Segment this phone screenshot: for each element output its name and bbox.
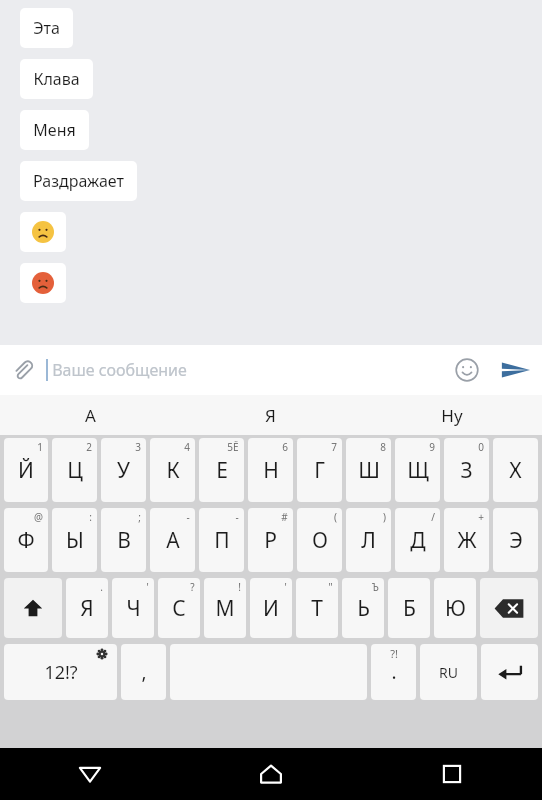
button[interactable]: П xyxy=(199,508,244,572)
staticText: 5Ё xyxy=(227,440,239,454)
staticText: Ы xyxy=(66,526,84,555)
staticText: ?! xyxy=(390,646,398,661)
button[interactable]: 12!? xyxy=(4,644,117,700)
button[interactable]: Н xyxy=(248,438,293,502)
staticText: RU xyxy=(439,663,458,682)
button[interactable]: Attach xyxy=(0,347,46,393)
button[interactable]: Щ xyxy=(395,438,440,502)
button[interactable]: Меня xyxy=(20,110,89,150)
button[interactable]: Send xyxy=(490,345,542,395)
button[interactable]: Раздражает xyxy=(20,161,137,201)
button[interactable]: К xyxy=(150,438,195,502)
button[interactable]: Ц xyxy=(52,438,97,502)
staticText: ? xyxy=(190,580,195,594)
button[interactable]: С xyxy=(158,578,200,638)
button[interactable]: Ю xyxy=(434,578,476,638)
button[interactable]: Р xyxy=(248,508,293,572)
staticText: И xyxy=(263,594,279,623)
button[interactable]: Emoji xyxy=(444,347,490,393)
button[interactable]: RU xyxy=(420,644,477,700)
staticText: 8 xyxy=(380,440,386,454)
staticText: ! xyxy=(238,580,241,594)
button[interactable]: , xyxy=(121,644,166,700)
staticText: " xyxy=(328,580,333,594)
button[interactable]: Ф xyxy=(4,508,48,572)
button[interactable]: Ь xyxy=(342,578,384,638)
button[interactable]: Х xyxy=(493,438,538,502)
button[interactable]: Л xyxy=(346,508,391,572)
staticText: Ь xyxy=(357,594,370,623)
button[interactable]: Shift xyxy=(4,578,62,638)
staticText: М xyxy=(215,594,235,623)
button[interactable]: Ы xyxy=(52,508,97,572)
staticText: 12!? xyxy=(44,660,78,685)
button[interactable]: Я xyxy=(66,578,108,638)
button[interactable]: Home xyxy=(180,748,361,800)
staticText: У xyxy=(117,456,130,485)
button[interactable]: Backspace xyxy=(480,578,538,638)
staticText: Ваше сообщение xyxy=(52,359,187,381)
button[interactable]: М xyxy=(204,578,246,638)
staticText: С xyxy=(172,594,186,623)
button[interactable]: Г xyxy=(297,438,342,502)
button[interactable]: Ж xyxy=(444,508,489,572)
staticText: Ж xyxy=(457,526,477,555)
button[interactable]: . xyxy=(371,644,416,700)
button[interactable]: Эта xyxy=(20,8,73,48)
button[interactable]: Э xyxy=(493,508,538,572)
staticText: - xyxy=(235,510,239,524)
staticText: 0 xyxy=(478,440,484,454)
button[interactable]: Е xyxy=(199,438,244,502)
staticText: . xyxy=(391,659,397,685)
staticText: Эта xyxy=(33,17,60,39)
staticText: 2 xyxy=(86,440,92,454)
staticText: , xyxy=(141,659,147,685)
button[interactable] xyxy=(481,644,538,700)
staticText: Раздражает xyxy=(33,170,124,192)
button[interactable]: И xyxy=(250,578,292,638)
button[interactable]: О xyxy=(297,508,342,572)
button[interactable]: Й xyxy=(4,438,48,502)
button[interactable]: Я xyxy=(180,395,361,435)
button[interactable] xyxy=(20,212,66,252)
button[interactable]: Б xyxy=(388,578,430,638)
staticText: Ч xyxy=(126,594,141,623)
staticText: Р xyxy=(264,526,277,555)
button[interactable]: Клава xyxy=(20,59,93,99)
button[interactable]: Recents xyxy=(361,748,542,800)
button[interactable] xyxy=(20,263,66,303)
staticText: Клава xyxy=(33,68,80,90)
staticText: Х xyxy=(509,456,522,485)
button[interactable]: А xyxy=(150,508,195,572)
staticText: З xyxy=(460,456,473,485)
button[interactable]: Д xyxy=(395,508,440,572)
button[interactable]: З xyxy=(444,438,489,502)
staticText: ) xyxy=(383,510,386,524)
staticText: Ш xyxy=(358,456,380,485)
button[interactable]: Т xyxy=(296,578,338,638)
button[interactable]: Ч xyxy=(112,578,154,638)
button[interactable]: Back xyxy=(0,748,180,800)
staticText: А xyxy=(85,404,96,427)
staticText: 6 xyxy=(282,440,288,454)
button[interactable]: В xyxy=(101,508,146,572)
button[interactable]: Ну xyxy=(361,395,542,435)
staticText: + xyxy=(478,510,484,524)
button[interactable]: Ш xyxy=(346,438,391,502)
staticText: Л xyxy=(361,526,376,555)
staticText: Е xyxy=(216,456,228,485)
staticText: ; xyxy=(138,510,141,524)
button[interactable]: У xyxy=(101,438,146,502)
staticText: ' xyxy=(146,580,149,594)
staticText: - xyxy=(186,510,190,524)
staticText: 7 xyxy=(331,440,337,454)
staticText: ' xyxy=(284,580,287,594)
staticText: П xyxy=(214,526,230,555)
staticText: Ну xyxy=(441,404,463,427)
staticText: Меня xyxy=(33,119,76,141)
button[interactable]: А xyxy=(0,395,180,435)
staticText: Я xyxy=(265,404,276,427)
staticText: 3 xyxy=(135,440,141,454)
staticText: Н xyxy=(263,456,279,485)
